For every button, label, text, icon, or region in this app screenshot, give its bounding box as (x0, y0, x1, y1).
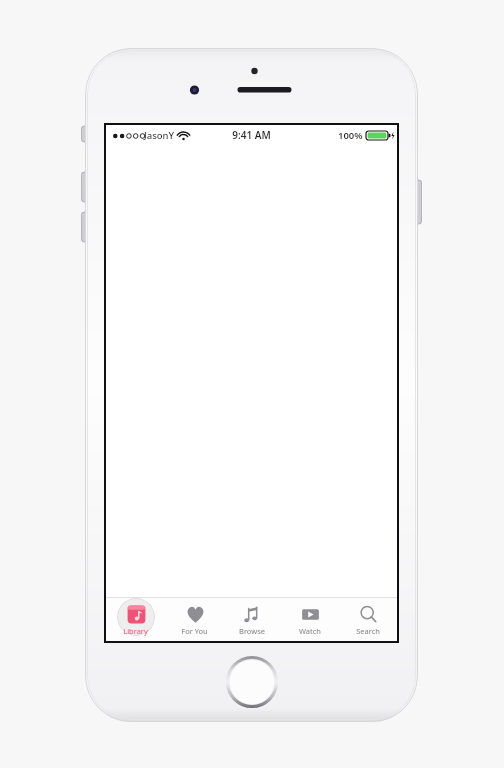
staticText: 9:41 AM (232, 128, 271, 142)
staticText: 100% (338, 129, 363, 142)
staticText: JasonY (144, 129, 175, 142)
staticText: Browse (239, 626, 265, 636)
button[interactable]: Browse (223, 598, 281, 641)
button[interactable]: Watch (281, 598, 339, 641)
button[interactable]: Library (106, 598, 165, 641)
button[interactable]: Home (226, 656, 278, 708)
button[interactable]: For You (165, 598, 223, 641)
staticText: Watch (299, 626, 321, 636)
staticText: Search (356, 626, 380, 636)
staticText: Library (123, 626, 148, 636)
button[interactable]: Search (339, 598, 397, 641)
staticText: For You (181, 626, 208, 636)
